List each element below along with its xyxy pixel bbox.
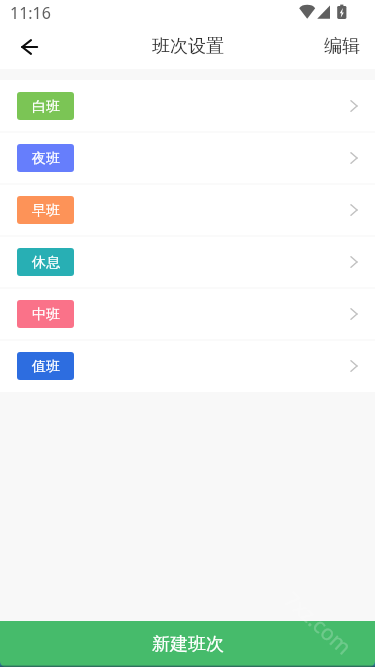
- staticText: 白班: [32, 98, 60, 116]
- button[interactable]: 返回: [0, 24, 48, 69]
- button[interactable]: 值班: [0, 340, 375, 392]
- button[interactable]: 新建班次: [0, 621, 375, 667]
- staticText: 新建班次: [152, 633, 224, 656]
- button[interactable]: 白班: [0, 80, 375, 132]
- staticText: 11:16: [10, 2, 51, 24]
- button[interactable]: 早班: [0, 184, 375, 236]
- staticText: 夜班: [32, 150, 60, 168]
- staticText: 值班: [32, 358, 60, 376]
- button[interactable]: 中班: [0, 288, 375, 340]
- button[interactable]: 夜班: [0, 132, 375, 184]
- button[interactable]: 编辑: [309, 24, 375, 69]
- staticText: 编辑: [324, 35, 360, 58]
- staticText: 班次设置: [152, 35, 224, 58]
- staticText: 7xz.com: [278, 585, 358, 662]
- staticText: 中班: [32, 306, 60, 324]
- staticText: 早班: [32, 202, 60, 220]
- staticText: 休息: [32, 254, 60, 272]
- button[interactable]: 休息: [0, 236, 375, 288]
